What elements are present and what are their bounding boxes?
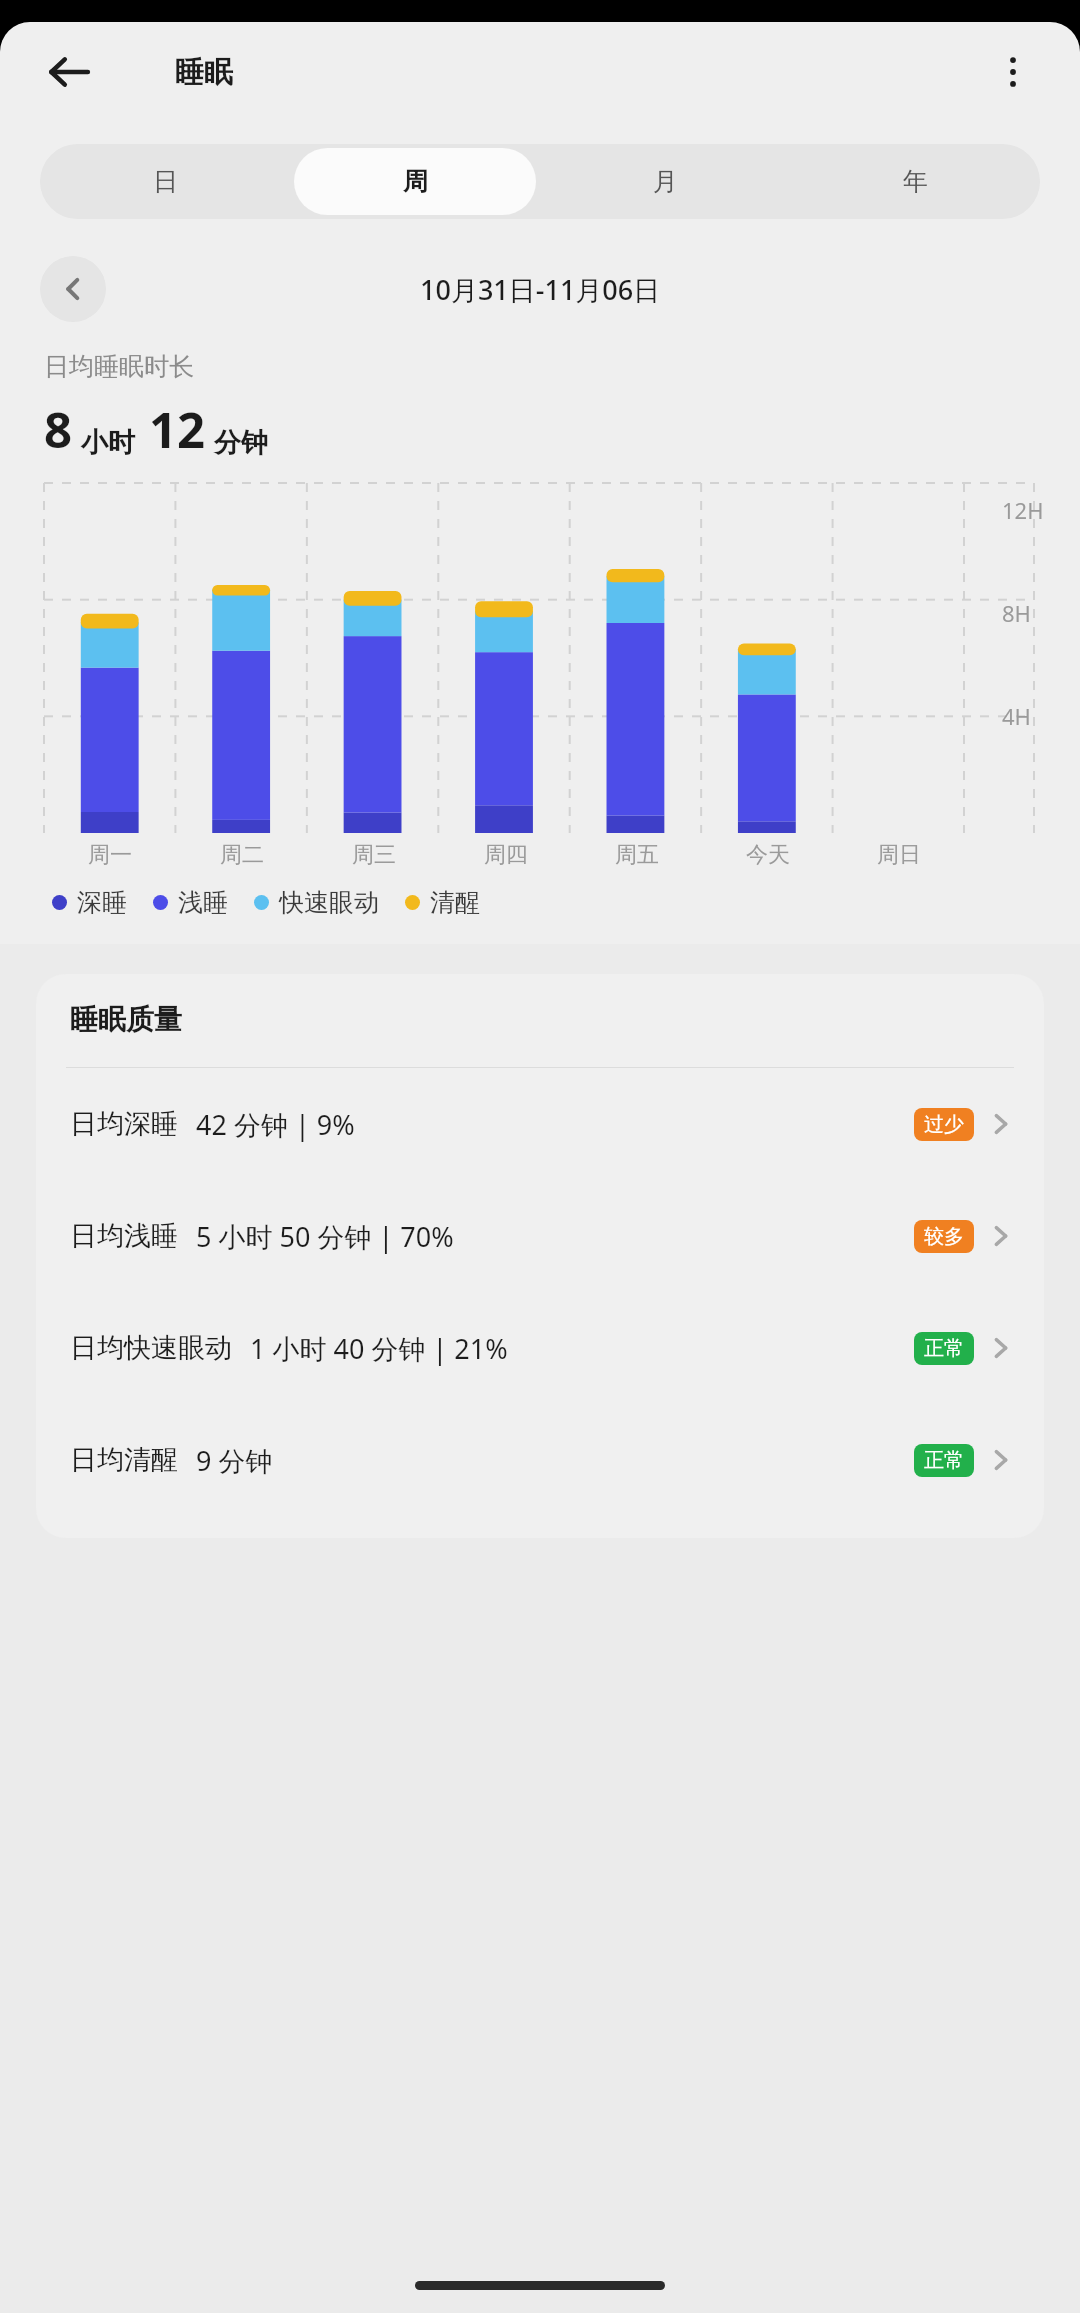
button[interactable]: 清醒: [405, 887, 480, 918]
button[interactable]: Previous week: [40, 256, 106, 322]
staticText: 日均深睡: [70, 1107, 178, 1141]
button[interactable]: 浅睡: [153, 887, 228, 918]
staticText: 睡眠: [175, 54, 233, 91]
staticText: 日均浅睡: [70, 1219, 178, 1253]
staticText: 周五: [615, 841, 659, 869]
staticText: 周三: [352, 841, 396, 869]
button[interactable]: 日: [44, 148, 286, 215]
staticText: 清醒: [430, 887, 480, 918]
button[interactable]: 日均浅睡: [36, 1180, 1044, 1292]
button[interactable]: 深睡: [52, 887, 127, 918]
staticText: 小时: [81, 426, 135, 460]
staticText: 12: [149, 396, 206, 463]
button[interactable]: 快速眼动: [254, 887, 379, 918]
staticText: 深睡: [77, 887, 127, 918]
staticText: 8H: [1002, 598, 1031, 628]
staticText: 日均清醒: [70, 1443, 178, 1477]
staticText: 月: [653, 166, 678, 197]
button[interactable]: 日均快速眼动: [36, 1292, 1044, 1404]
staticText: 周二: [220, 841, 264, 869]
staticText: 年: [903, 166, 928, 197]
staticText: 正常: [924, 1448, 964, 1473]
staticText: 5 小时 50 分钟 | 70%: [196, 1218, 454, 1255]
staticText: 今天: [746, 841, 790, 869]
staticText: 日均睡眠时长: [44, 351, 194, 382]
staticText: 周一: [88, 841, 132, 869]
staticText: 正常: [924, 1336, 964, 1361]
staticText: 10月31日-11月06日: [420, 271, 661, 308]
staticText: 9 分钟: [196, 1442, 273, 1479]
staticText: 1 小时 40 分钟 | 21%: [250, 1330, 508, 1367]
staticText: 4H: [1002, 701, 1031, 731]
staticText: 日均快速眼动: [70, 1331, 232, 1365]
staticText: 周: [403, 166, 428, 197]
staticText: 8: [44, 396, 73, 463]
staticText: 日: [153, 166, 178, 197]
staticText: 分钟: [214, 426, 268, 460]
staticText: 浅睡: [178, 887, 228, 918]
staticText: 周日: [877, 841, 921, 869]
button[interactable]: 周: [294, 148, 536, 215]
staticText: 睡眠质量: [70, 1002, 182, 1037]
staticText: 12H: [1002, 495, 1044, 525]
button[interactable]: More options: [986, 45, 1040, 99]
staticText: 过少: [924, 1112, 964, 1137]
button[interactable]: 年: [794, 148, 1036, 215]
staticText: 42 分钟 | 9%: [196, 1106, 355, 1143]
button[interactable]: 月: [544, 148, 786, 215]
button[interactable]: 日均深睡: [36, 1068, 1044, 1180]
button[interactable]: Back: [42, 45, 96, 99]
button[interactable]: 日均清醒: [36, 1404, 1044, 1516]
staticText: 周四: [484, 841, 528, 869]
staticText: 快速眼动: [279, 887, 379, 918]
staticText: 较多: [924, 1224, 964, 1249]
